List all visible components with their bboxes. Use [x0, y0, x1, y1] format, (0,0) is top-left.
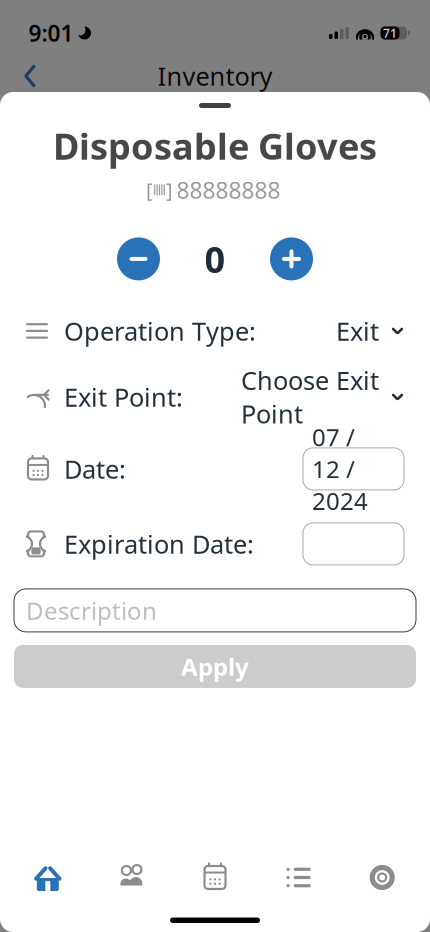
- staticText: Exit Point:: [64, 380, 183, 414]
- staticText: Expiration Date:: [64, 527, 254, 561]
- button[interactable]: People: [90, 851, 173, 903]
- staticText: Disposable Gloves: [53, 122, 377, 170]
- button[interactable]: Apply: [0, 645, 430, 688]
- button[interactable]: Settings: [340, 851, 424, 903]
- button[interactable]: Inventory list: [257, 851, 340, 903]
- staticText: Apply: [181, 650, 249, 682]
- button[interactable]: 07 / 12 / 2024: [303, 448, 404, 490]
- button[interactable]: Home: [6, 851, 90, 903]
- button[interactable]: Calendar: [173, 851, 257, 903]
- button[interactable]: Choose expiration date: [303, 523, 404, 565]
- staticText: 07 / 12 / 2024: [312, 421, 368, 517]
- staticText: 71: [383, 25, 397, 41]
- staticText: Exit: [336, 314, 379, 348]
- staticText: 9:01: [28, 18, 73, 48]
- button[interactable]: Operation Type:: [0, 309, 430, 353]
- staticText: 88888888: [176, 175, 280, 205]
- staticText: Choose Exit Point: [241, 363, 379, 431]
- button[interactable]: Back: [8, 60, 52, 92]
- button[interactable]: Description: [0, 589, 430, 632]
- staticText: Inventory: [157, 59, 272, 93]
- button[interactable]: Exit Point:: [0, 375, 430, 419]
- staticText: ]: [166, 177, 173, 203]
- staticText: Operation Type:: [64, 314, 256, 348]
- staticText: 0: [204, 235, 225, 283]
- button[interactable]: Decrease quantity: [108, 229, 168, 289]
- staticText: Description: [26, 594, 157, 626]
- button[interactable]: Increase quantity: [261, 229, 321, 289]
- staticText: Date:: [64, 452, 126, 486]
- staticText: [: [146, 177, 153, 203]
